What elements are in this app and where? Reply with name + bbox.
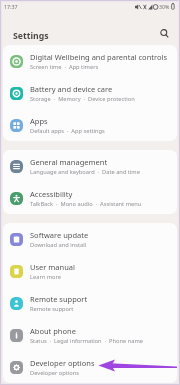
button[interactable]: About phone	[3, 319, 177, 351]
button[interactable]: Accessibility	[3, 182, 177, 214]
button[interactable]: Apps	[3, 109, 177, 141]
staticText: Language and keyboard · Date and time	[30, 168, 140, 176]
staticText: Remote support	[30, 294, 88, 304]
button[interactable]: General management	[3, 150, 177, 182]
staticText: Screen time · App timers	[30, 63, 99, 71]
staticText: Remote support	[30, 305, 74, 313]
staticText: Digital Wellbeing and parental controls	[30, 52, 167, 62]
staticText: Accessibility	[30, 189, 73, 199]
staticText: Default apps · App settings	[30, 127, 105, 135]
staticText: About phone	[30, 326, 76, 336]
button[interactable]: Remote support	[3, 287, 177, 319]
button[interactable]: Software update	[3, 223, 177, 255]
staticText: General management	[30, 157, 108, 167]
staticText: Developer options	[30, 358, 95, 368]
button[interactable]: Digital Wellbeing and parental controls	[3, 45, 177, 77]
staticText: 30%	[159, 3, 170, 10]
staticText: Storage · Memory · Device protection	[30, 95, 135, 103]
button[interactable]: Developer options	[3, 351, 177, 383]
staticText: Settings	[13, 30, 49, 42]
button[interactable]: Battery and device care	[3, 77, 177, 109]
staticText: 17:37	[4, 3, 18, 10]
button[interactable]: User manual	[3, 255, 177, 287]
staticText: User manual	[30, 262, 75, 272]
staticText: Battery and device care	[30, 84, 113, 94]
staticText: Learn more	[30, 273, 61, 281]
staticText: Apps	[30, 116, 48, 126]
staticText: Developer options	[30, 369, 79, 377]
staticText: Software update	[30, 230, 89, 240]
staticText: Download and install	[30, 241, 87, 249]
button[interactable]: Search	[157, 26, 172, 41]
staticText: TalkBack · Mono audio · Assistant menu	[30, 200, 142, 208]
staticText: Status · Legal information · Phone name	[30, 337, 143, 345]
